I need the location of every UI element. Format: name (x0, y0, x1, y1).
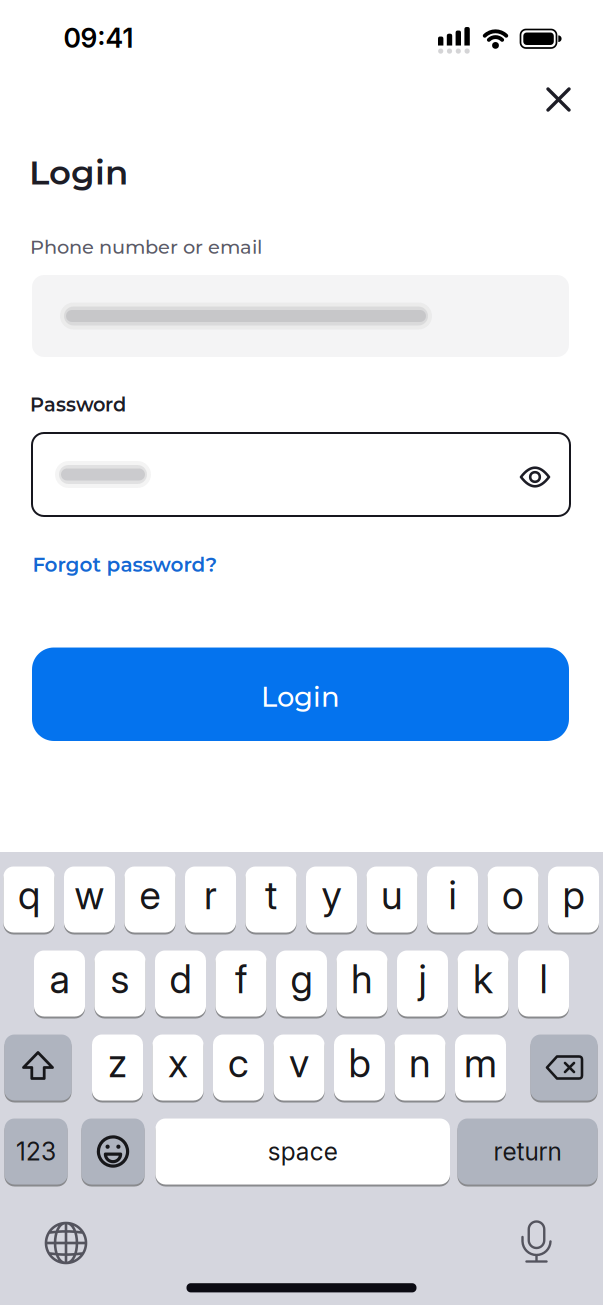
button[interactable]: return (457, 1118, 597, 1186)
staticText: Login (261, 680, 340, 714)
staticText: c (228, 1039, 249, 1087)
staticText: y (321, 871, 341, 919)
button[interactable]: Show password (513, 455, 557, 499)
staticText: Forgot password? (32, 552, 217, 577)
button[interactable]: z (92, 1034, 143, 1102)
button[interactable]: g (276, 950, 327, 1018)
button[interactable]: p (548, 866, 599, 934)
button[interactable]: t (245, 866, 296, 934)
staticText: f (235, 955, 247, 1003)
button[interactable]: s (94, 950, 145, 1018)
button[interactable]: e (124, 866, 175, 934)
button[interactable]: m (455, 1034, 506, 1102)
button[interactable]: Dictation (514, 1220, 558, 1264)
button[interactable]: f (215, 950, 266, 1018)
staticText: r (204, 871, 217, 919)
staticText: m (464, 1039, 497, 1087)
staticText: j (418, 955, 426, 1003)
staticText: t (265, 871, 277, 919)
button[interactable]: Next keyboard (44, 1221, 88, 1265)
button[interactable]: r (185, 866, 236, 934)
button[interactable]: o (487, 866, 538, 934)
button[interactable]: Phone number or email (32, 275, 569, 357)
button[interactable]: space (155, 1118, 450, 1186)
staticText: d (169, 955, 191, 1003)
staticText: q (18, 871, 40, 919)
staticText: w (74, 871, 104, 919)
button[interactable]: Shift (4, 1034, 71, 1102)
button[interactable]: a (34, 950, 85, 1018)
button[interactable]: d (155, 950, 206, 1018)
button[interactable]: Password (31, 432, 571, 517)
button[interactable]: Login (32, 647, 569, 741)
button[interactable]: y (306, 866, 357, 934)
button[interactable]: Forgot password? (32, 552, 217, 577)
staticText: x (168, 1039, 188, 1087)
button[interactable]: i (427, 866, 478, 934)
staticText: k (473, 955, 493, 1003)
staticText: e (139, 871, 160, 919)
staticText: l (539, 955, 547, 1003)
button[interactable]: j (397, 950, 448, 1018)
staticText: return (493, 1137, 561, 1166)
button[interactable]: k (457, 950, 508, 1018)
button[interactable]: h (336, 950, 387, 1018)
button[interactable]: 123 (4, 1118, 67, 1186)
button[interactable]: w (64, 866, 115, 934)
button[interactable]: Delete (530, 1034, 597, 1102)
staticText: s (110, 955, 129, 1003)
staticText: o (502, 871, 524, 919)
button[interactable]: q (3, 866, 54, 934)
button[interactable]: Emoji (81, 1118, 144, 1186)
button[interactable]: l (518, 950, 569, 1018)
staticText: p (562, 871, 584, 919)
staticText: space (268, 1137, 338, 1166)
staticText: h (351, 955, 373, 1003)
staticText: z (108, 1039, 127, 1087)
button[interactable]: n (394, 1034, 445, 1102)
button[interactable]: Close (538, 79, 579, 120)
staticText: i (448, 871, 456, 919)
staticText: a (49, 955, 69, 1003)
staticText: n (409, 1039, 431, 1087)
staticText: Login (29, 151, 128, 193)
staticText: v (289, 1039, 309, 1087)
staticText: Password (30, 393, 126, 416)
button[interactable]: b (334, 1034, 385, 1102)
button[interactable]: u (366, 866, 417, 934)
button[interactable]: x (152, 1034, 203, 1102)
staticText: u (381, 871, 403, 919)
staticText: g (290, 955, 312, 1003)
staticText: 123 (16, 1137, 56, 1166)
staticText: b (348, 1039, 370, 1087)
button[interactable]: v (273, 1034, 324, 1102)
staticText: Phone number or email (30, 235, 262, 259)
button[interactable]: c (213, 1034, 264, 1102)
staticText: 09:41 (63, 22, 133, 54)
